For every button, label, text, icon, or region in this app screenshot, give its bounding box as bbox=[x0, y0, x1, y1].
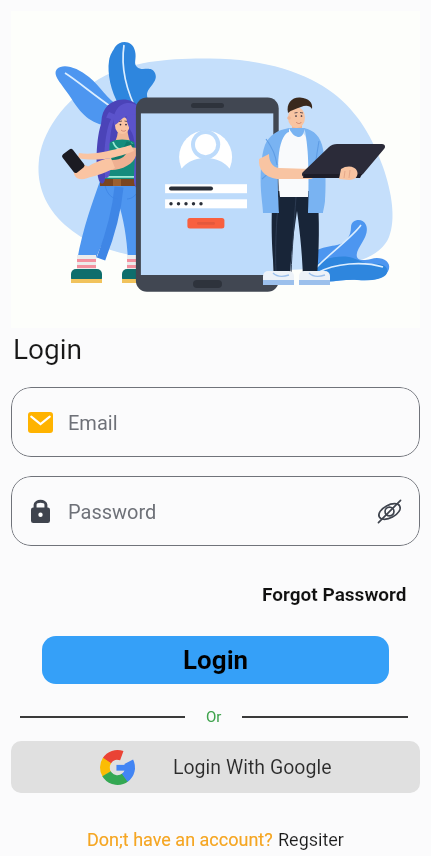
staticText: Email bbox=[68, 411, 403, 434]
button[interactable]: Login With Google bbox=[11, 741, 420, 793]
button[interactable]: Login bbox=[42, 636, 389, 684]
staticText: Regsiter bbox=[278, 829, 344, 850]
staticText: Login bbox=[183, 645, 249, 675]
button[interactable]: Regsiter bbox=[278, 829, 344, 850]
button[interactable]: Forgot Password bbox=[262, 583, 431, 605]
button[interactable]: Password bbox=[11, 476, 420, 546]
staticText: Password bbox=[68, 500, 376, 523]
button[interactable]: Show password bbox=[376, 498, 403, 525]
staticText: Forgot Password bbox=[262, 583, 407, 605]
staticText: Login With Google bbox=[173, 756, 332, 779]
staticText: Don;t have an account? bbox=[87, 829, 278, 850]
staticText: Login bbox=[13, 333, 83, 366]
staticText: Or bbox=[206, 708, 222, 726]
button[interactable]: Email bbox=[11, 387, 420, 457]
